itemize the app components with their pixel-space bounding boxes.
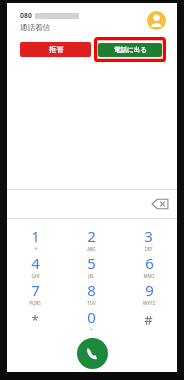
staticText: MNO <box>143 273 155 279</box>
staticText: 3 <box>144 226 153 246</box>
staticText: TUV <box>87 300 96 306</box>
staticText: GHI <box>31 273 40 279</box>
staticText: 9 <box>145 280 154 300</box>
button[interactable]: 1 <box>7 225 63 252</box>
staticText: 4 <box>31 253 40 273</box>
staticText: 通話着信 <box>20 23 50 32</box>
button[interactable]: 拒否 <box>20 42 91 57</box>
button[interactable]: 3 <box>120 225 177 252</box>
button[interactable]: 080 <box>11 5 173 69</box>
staticText: WXYZ <box>143 300 155 306</box>
staticText: 2 <box>87 226 96 246</box>
staticText: ∞ <box>34 246 38 251</box>
staticText: 電話に出る <box>114 46 147 54</box>
button[interactable]: 7 <box>7 279 63 306</box>
staticText: + <box>90 327 93 333</box>
button[interactable]: 5 <box>63 252 120 279</box>
staticText: 0 <box>87 307 96 327</box>
button[interactable]: * <box>7 306 63 333</box>
button[interactable]: 0 <box>63 306 120 333</box>
button[interactable]: 4 <box>7 252 63 279</box>
button[interactable]: # <box>120 306 177 333</box>
button[interactable]: Call <box>77 338 108 369</box>
button[interactable]: 電話に出る <box>98 43 162 57</box>
staticText: 拒否 <box>49 45 63 54</box>
staticText: 6 <box>145 253 154 273</box>
staticText: 7 <box>31 280 40 300</box>
staticText: 5 <box>87 253 96 273</box>
button[interactable]: 2 <box>63 225 120 252</box>
staticText: 080 <box>20 11 33 21</box>
staticText: 8 <box>87 280 96 300</box>
staticText: 1 <box>31 226 40 246</box>
staticText: DEF <box>144 246 153 252</box>
staticText: * <box>31 311 39 329</box>
staticText: JKL <box>88 273 95 279</box>
staticText: PQRS <box>29 300 41 306</box>
button[interactable]: 6 <box>120 252 177 279</box>
button[interactable]: Backspace <box>151 195 169 213</box>
button[interactable]: 8 <box>63 279 120 306</box>
staticText: ABC <box>87 246 96 252</box>
button[interactable]: Contact avatar <box>147 11 166 30</box>
button[interactable]: 9 <box>120 279 177 306</box>
staticText: # <box>144 311 153 329</box>
